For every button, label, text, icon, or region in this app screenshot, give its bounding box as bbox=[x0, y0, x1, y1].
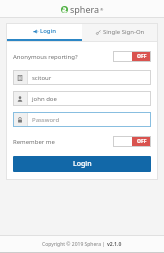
staticText: Login bbox=[73, 159, 92, 169]
staticText: v2.1.0 bbox=[107, 241, 122, 248]
button[interactable]: scitour bbox=[13, 70, 151, 85]
staticText: OFF bbox=[137, 138, 147, 145]
button[interactable]: Password bbox=[13, 112, 151, 127]
button[interactable]: Toggle off bbox=[113, 51, 151, 62]
staticText: Copyright © 2019 Sphera | bbox=[42, 241, 107, 248]
staticText: Password bbox=[32, 116, 60, 124]
staticText: ® bbox=[100, 7, 104, 12]
button[interactable]: Toggle off bbox=[113, 136, 151, 147]
staticText: Anonymous reporting? bbox=[13, 53, 78, 61]
button[interactable]: Login bbox=[6, 23, 82, 41]
staticText: Single Sign-On bbox=[103, 28, 145, 36]
staticText: Remember me bbox=[13, 138, 55, 146]
staticText: scitour bbox=[32, 74, 52, 82]
staticText: Login bbox=[40, 27, 56, 35]
staticText: sphera bbox=[70, 3, 100, 15]
staticText: john doe bbox=[32, 95, 57, 103]
button[interactable]: Login bbox=[13, 156, 151, 172]
button[interactable]: Single Sign-On bbox=[82, 23, 158, 41]
staticText: OFF bbox=[137, 53, 147, 60]
button[interactable]: john doe bbox=[13, 91, 151, 106]
